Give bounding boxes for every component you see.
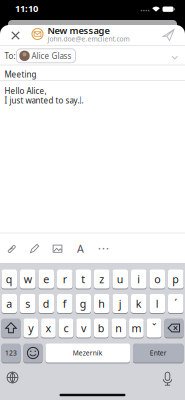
staticText: e [43, 272, 49, 286]
button[interactable]: i [131, 269, 146, 288]
staticText: z [99, 272, 104, 286]
button[interactable]: m [129, 318, 144, 337]
staticText: n [115, 321, 122, 335]
button[interactable]: Attach file [5, 242, 17, 256]
button[interactable]: x [41, 318, 56, 337]
staticText: I just wanted to say... [4, 95, 83, 106]
button[interactable]: b [94, 318, 108, 337]
staticText: w [24, 272, 32, 286]
staticText: y [28, 321, 33, 335]
button[interactable]: u [112, 269, 128, 288]
staticText: j [119, 296, 122, 311]
staticText: v [81, 321, 86, 335]
button[interactable]: v [76, 318, 91, 337]
button[interactable]: f [57, 294, 72, 313]
button[interactable]: Expand recipients [170, 52, 180, 62]
staticText: g [80, 296, 87, 311]
button[interactable]: ˇ [147, 318, 161, 337]
button[interactable]: Close [7, 27, 23, 43]
button[interactable]: Enter [133, 343, 183, 362]
button[interactable]: Mezerník [45, 343, 130, 362]
staticText: john.doe@e.emclient.com [47, 35, 129, 43]
button[interactable]: r [57, 269, 72, 288]
button[interactable]: c [59, 318, 73, 337]
button[interactable]: Shift [1, 318, 20, 337]
staticText: New message [47, 24, 109, 37]
staticText: Enter [150, 349, 167, 357]
button[interactable]: Send [161, 28, 175, 42]
button[interactable]: q [1, 269, 17, 288]
staticText: 123 [5, 349, 17, 357]
button[interactable]: l [149, 294, 165, 313]
staticText: Meeting [4, 69, 36, 80]
button[interactable]: ´ [168, 294, 183, 313]
button[interactable]: Next keyboard [5, 370, 19, 384]
staticText: s [25, 296, 30, 311]
staticText: 11:10 [15, 2, 38, 15]
button[interactable]: 123 [1, 343, 20, 362]
staticText: d [43, 296, 50, 311]
button[interactable]: e [38, 269, 54, 288]
button[interactable]: a [1, 294, 17, 313]
button[interactable]: Format text [73, 241, 87, 255]
button[interactable]: h [94, 294, 109, 313]
button[interactable]: Dictate [160, 371, 174, 387]
staticText: x [45, 321, 51, 335]
button[interactable]: t [75, 269, 91, 288]
button[interactable]: More [96, 242, 110, 256]
staticText: q [6, 272, 13, 286]
button[interactable]: n [111, 318, 126, 337]
staticText: To: [4, 50, 15, 61]
staticText: a [6, 296, 12, 311]
staticText: b [98, 321, 105, 335]
staticText: u [117, 272, 124, 286]
button[interactable]: z [94, 269, 109, 288]
staticText: t [81, 272, 85, 286]
button[interactable]: Insert image [51, 242, 63, 256]
staticText: Mezerník [73, 349, 103, 357]
button[interactable]: Signature [28, 242, 40, 256]
staticText: A [77, 241, 84, 256]
staticText: m [131, 321, 141, 335]
staticText: r [63, 272, 67, 286]
button[interactable]: w [20, 269, 35, 288]
button[interactable]: k [131, 294, 146, 313]
staticText: f [63, 296, 67, 311]
staticText: p [172, 272, 179, 286]
staticText: Hello Alice, [4, 86, 46, 96]
button[interactable]: s [20, 294, 35, 313]
staticText: ´ [174, 296, 177, 311]
button[interactable]: Delete [164, 318, 183, 337]
button[interactable]: o [149, 269, 165, 288]
staticText: l [156, 296, 159, 311]
staticText: Alice Glass [31, 50, 71, 61]
button[interactable]: Alice Glass [16, 49, 75, 63]
button[interactable]: d [38, 294, 54, 313]
staticText: h [98, 296, 105, 311]
button[interactable]: Emoji [23, 343, 42, 362]
staticText: ˇ [152, 321, 156, 335]
staticText: i [137, 272, 140, 286]
button[interactable]: j [112, 294, 128, 313]
button[interactable]: p [168, 269, 183, 288]
staticText: c [63, 321, 68, 335]
staticText: k [136, 296, 142, 311]
button[interactable]: g [75, 294, 91, 313]
staticText: o [154, 272, 160, 286]
button[interactable]: y [23, 318, 38, 337]
